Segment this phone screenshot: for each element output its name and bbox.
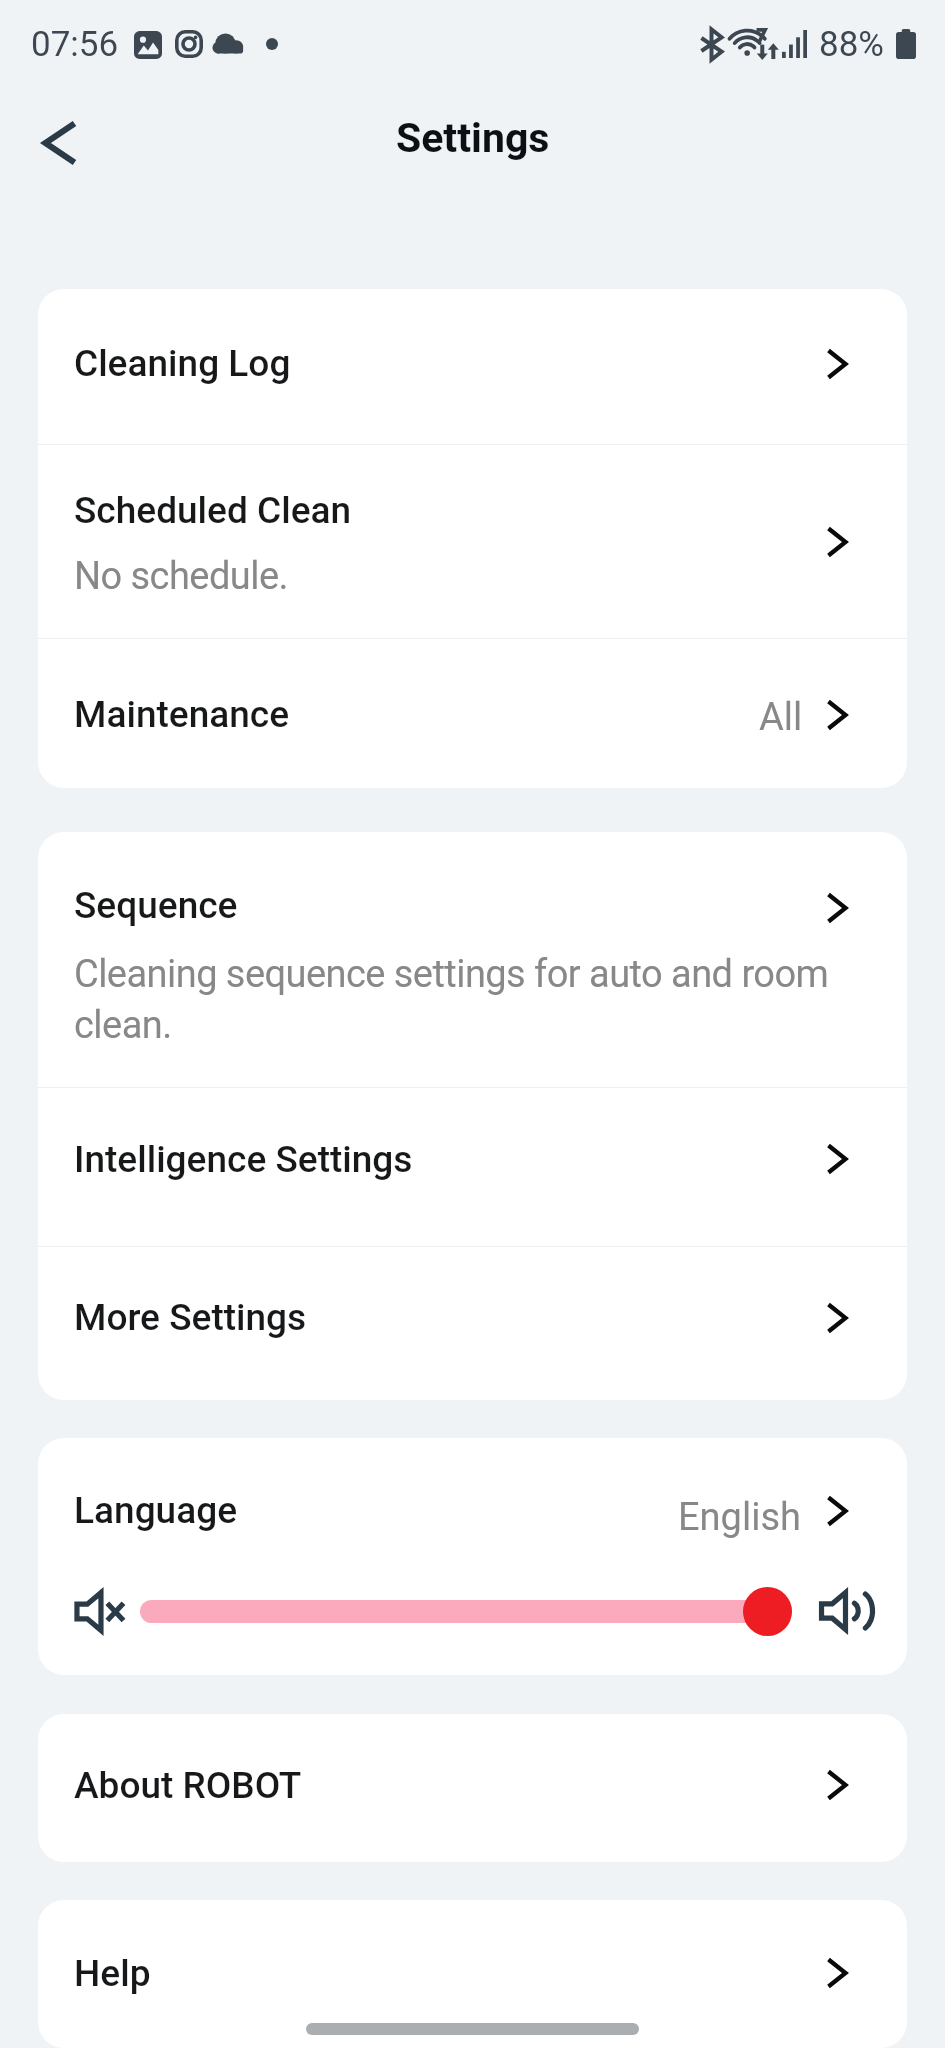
button[interactable]: Back [20, 103, 100, 183]
button[interactable]: Volume slider [140, 1586, 792, 1636]
staticText: Cleaning Log [74, 342, 291, 385]
button[interactable]: Language [38, 1438, 907, 1579]
button[interactable]: Maintenance [38, 639, 907, 788]
staticText: Sequence [74, 884, 238, 927]
button[interactable]: Mute [75, 1591, 124, 1632]
staticText: About ROBOT [74, 1764, 302, 1807]
staticText: Language [74, 1489, 238, 1532]
staticText: English [678, 1495, 801, 1540]
button[interactable]: Intelligence Settings [38, 1088, 907, 1246]
button[interactable]: About ROBOT [38, 1714, 907, 1862]
staticText: Maintenance [74, 693, 290, 736]
button[interactable]: Maximum volume [820, 1591, 871, 1631]
button[interactable]: Cleaning Log [38, 289, 907, 444]
staticText: Cleaning sequence settings for auto and … [74, 952, 871, 1048]
button[interactable]: More Settings [38, 1247, 907, 1400]
button[interactable]: Scheduled Clean [38, 445, 907, 638]
button[interactable]: Sequence [38, 832, 907, 1087]
staticText: 88% [819, 24, 884, 65]
staticText: More Settings [74, 1296, 307, 1339]
button[interactable]: Help [38, 1900, 907, 2048]
staticText: All [759, 695, 803, 740]
staticText: Scheduled Clean [74, 489, 352, 532]
staticText: 07:56 [31, 24, 119, 65]
staticText: Help [74, 1952, 151, 1995]
staticText: Settings [396, 114, 550, 162]
staticText: No schedule. [74, 554, 288, 599]
staticText: Intelligence Settings [74, 1138, 413, 1181]
